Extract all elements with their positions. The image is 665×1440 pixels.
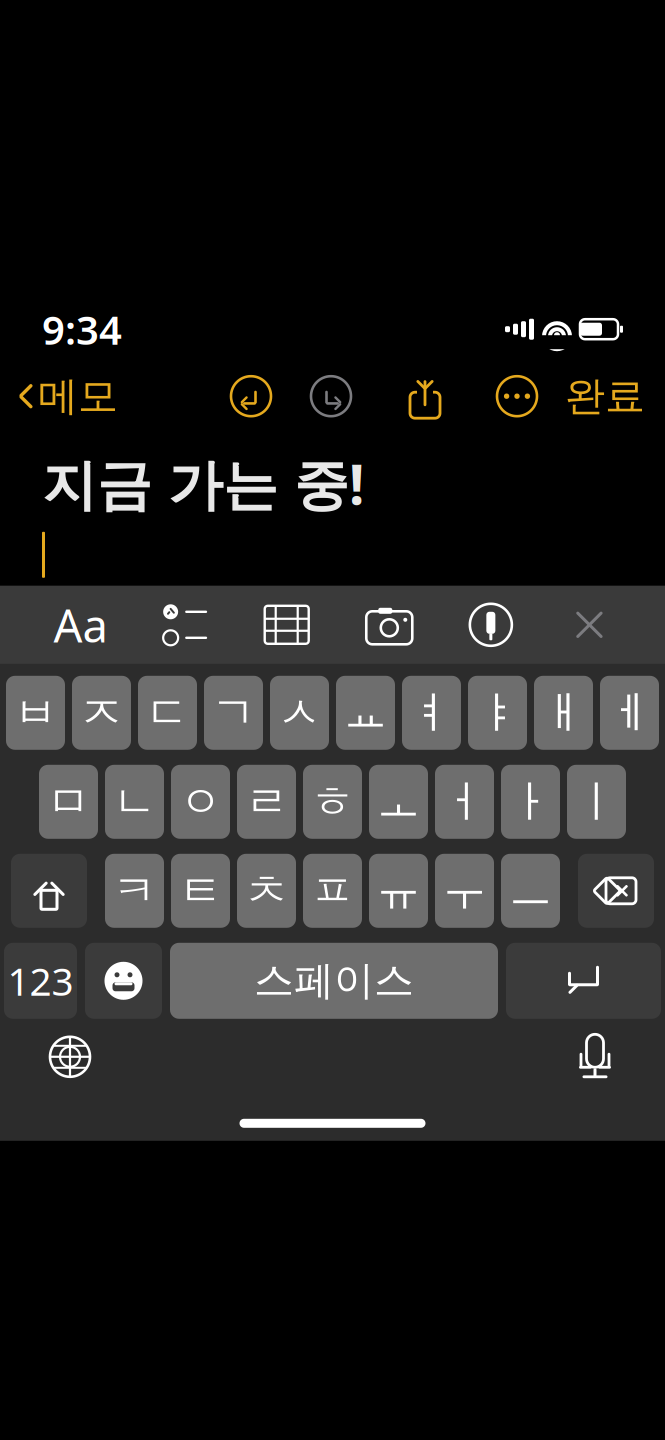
button[interactable]: Return — [506, 943, 661, 1019]
button[interactable]: ㅗ — [369, 765, 428, 839]
button[interactable]: ㅠ — [369, 854, 428, 928]
staticText: 9:34 — [42, 303, 122, 356]
button[interactable]: Share — [403, 372, 447, 420]
button[interactable]: ㅌ — [171, 854, 230, 928]
button[interactable]: ㅔ — [600, 676, 659, 750]
staticText: ㅁ — [46, 775, 90, 829]
button[interactable]: ㅕ — [402, 676, 461, 750]
button[interactable]: ㅓ — [435, 765, 494, 839]
staticText: ㅈ — [79, 686, 123, 740]
button[interactable]: Markup — [468, 602, 514, 648]
button[interactable]: Dictation — [573, 1031, 665, 1083]
staticText: Aa — [54, 595, 108, 655]
staticText: ㅓ — [442, 775, 486, 829]
staticText: ㅏ — [508, 775, 552, 829]
staticText: ㅂ — [13, 686, 57, 740]
staticText: ㅣ — [574, 775, 618, 829]
button[interactable]: ㅊ — [237, 854, 296, 928]
button[interactable]: 123 — [4, 943, 77, 1019]
button[interactable]: Emoji — [85, 943, 162, 1019]
button[interactable]: 메모 — [0, 364, 118, 429]
staticText: ㅅ — [277, 686, 321, 740]
button[interactable]: ㅛ — [336, 676, 395, 750]
staticText: ㅗ — [376, 775, 420, 829]
staticText: ㅋ — [112, 864, 156, 918]
button[interactable]: ㄴ — [105, 765, 164, 839]
staticText: ㄷ — [145, 686, 189, 740]
button[interactable]: ㅜ — [435, 854, 494, 928]
staticText: ㅊ — [244, 864, 288, 918]
staticText: ㅠ — [376, 864, 420, 918]
button[interactable]: ㅐ — [534, 676, 593, 750]
staticText: ㅍ — [310, 864, 354, 918]
button[interactable]: ㅋ — [105, 854, 164, 928]
button[interactable]: Undo — [229, 374, 273, 418]
staticText: ㅔ — [607, 686, 651, 740]
staticText: ㅎ — [310, 775, 354, 829]
button[interactable]: ㄹ — [237, 765, 296, 839]
button[interactable]: 스페이스 — [170, 943, 498, 1019]
button[interactable]: Delete — [578, 854, 654, 928]
staticText: ㅇ — [178, 775, 222, 829]
button[interactable]: ㄷ — [138, 676, 197, 750]
button[interactable]: 완료 — [565, 364, 665, 429]
button[interactable]: Table — [263, 603, 311, 647]
button[interactable]: Shift — [11, 854, 87, 928]
button[interactable]: ㅇ — [171, 765, 230, 839]
staticText: ㅡ — [508, 864, 552, 918]
button[interactable]: Next keyboard — [0, 1035, 92, 1079]
button[interactable]: ㅅ — [270, 676, 329, 750]
button[interactable]: Close keyboard — [567, 603, 611, 647]
button[interactable]: ㅡ — [501, 854, 560, 928]
staticText: ㅛ — [343, 686, 387, 740]
staticText: ㄴ — [112, 775, 156, 829]
staticText: 123 — [7, 955, 73, 1006]
staticText: 지금 가는 중! — [42, 447, 364, 520]
staticText: ㄱ — [211, 686, 255, 740]
button[interactable]: ㅏ — [501, 765, 560, 839]
button[interactable]: ㄱ — [204, 676, 263, 750]
button[interactable]: Checklist — [161, 602, 209, 648]
button[interactable]: Format — [54, 595, 108, 655]
staticText: 메모 — [38, 372, 118, 421]
button[interactable]: ㅈ — [72, 676, 131, 750]
button[interactable]: ㅂ — [6, 676, 65, 750]
staticText: ㄹ — [244, 775, 288, 829]
staticText: 완료 — [565, 372, 645, 421]
staticText: ㅐ — [541, 686, 585, 740]
button[interactable]: ㅎ — [303, 765, 362, 839]
staticText: ㅜ — [442, 864, 486, 918]
button[interactable]: Redo — [309, 374, 353, 418]
button[interactable]: ㅍ — [303, 854, 362, 928]
button[interactable]: Camera — [364, 603, 414, 647]
staticText: ㅑ — [475, 686, 519, 740]
staticText: 스페이스 — [254, 956, 414, 1005]
staticText: ㅕ — [409, 686, 453, 740]
button[interactable]: More — [495, 374, 539, 418]
button[interactable]: ㅑ — [468, 676, 527, 750]
button[interactable]: ㅁ — [39, 765, 98, 839]
staticText: ㅌ — [178, 864, 222, 918]
button[interactable]: ㅣ — [567, 765, 626, 839]
